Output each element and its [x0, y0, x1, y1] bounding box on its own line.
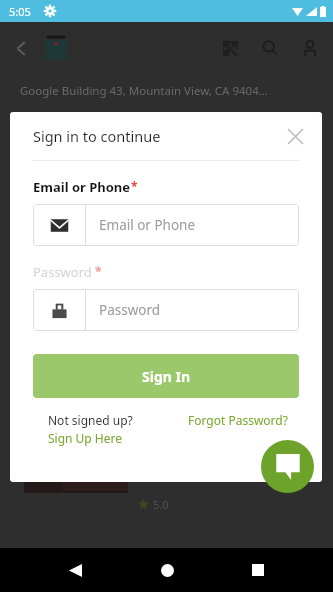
- button[interactable]: Home: [152, 555, 182, 585]
- staticText: Not signed up?: [48, 412, 133, 428]
- button[interactable]: Navigate up: [4, 31, 38, 65]
- button[interactable]: Not signed up?: [48, 412, 133, 446]
- button[interactable]: Chat: [261, 440, 314, 493]
- button[interactable]: Recent apps: [243, 555, 273, 585]
- button[interactable]: Account: [295, 33, 325, 63]
- button[interactable]: Forgot Password?: [188, 412, 288, 428]
- staticText: 5:05: [9, 4, 31, 19]
- staticText: Password: [99, 301, 161, 319]
- staticText: Sign Up Here: [48, 430, 123, 446]
- staticText: 5.0: [153, 497, 169, 512]
- staticText: *: [131, 178, 138, 194]
- staticText: *: [92, 263, 102, 279]
- staticText: Email or Phone: [33, 178, 131, 196]
- staticText: Sign In: [142, 367, 191, 386]
- button[interactable]: Search: [255, 33, 285, 63]
- button[interactable]: Password input: [33, 289, 299, 331]
- staticText: Sign in to continue: [33, 126, 161, 146]
- staticText: Password: [33, 263, 92, 281]
- button[interactable]: Scan QR code: [215, 33, 245, 63]
- button[interactable]: Email or Phone input: [33, 204, 299, 246]
- button[interactable]: Close: [278, 119, 312, 153]
- staticText: Email or Phone: [99, 216, 196, 234]
- button[interactable]: Back: [60, 555, 90, 585]
- button[interactable]: Sign In: [33, 354, 299, 398]
- staticText: Google Building 43, Mountain View, CA 94…: [20, 83, 268, 99]
